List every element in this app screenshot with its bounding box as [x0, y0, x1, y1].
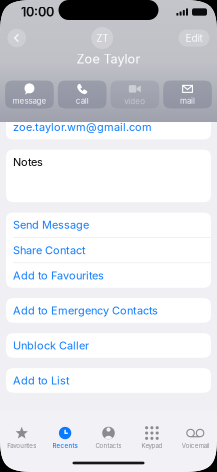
staticText: zoe.taylor.wm@gmail.com — [13, 120, 152, 134]
staticText: mail — [180, 96, 195, 106]
staticText: Add to List — [13, 374, 70, 387]
staticText: Keypad — [141, 442, 162, 449]
button[interactable]: zoe.taylor.wm@gmail.com — [6, 115, 211, 139]
button[interactable]: call — [58, 80, 106, 108]
staticText: call — [76, 96, 89, 106]
staticText: video — [124, 96, 145, 106]
button[interactable]: Unblock Caller — [6, 333, 211, 358]
staticText: Recents — [53, 442, 78, 449]
button[interactable]: Send Message — [6, 212, 211, 237]
staticText: Favourites — [7, 442, 36, 449]
staticText: 10:00 — [21, 4, 54, 20]
staticText: Edit — [185, 32, 202, 44]
button[interactable]: video — [110, 80, 159, 108]
button[interactable]: mail — [163, 80, 212, 108]
button[interactable]: Contacts — [87, 422, 130, 454]
staticText: Share Contact — [13, 243, 86, 257]
staticText: message — [12, 96, 46, 106]
staticText: Notes — [13, 155, 43, 169]
staticText: Add to Favourites — [13, 269, 104, 282]
staticText: Zoe Taylor — [76, 51, 140, 67]
button[interactable]: message — [5, 80, 54, 108]
button[interactable]: Voicemail — [174, 422, 217, 454]
button[interactable]: Add to List — [6, 368, 211, 393]
button[interactable]: Share Contact — [6, 238, 211, 262]
staticText: ZT — [96, 32, 108, 44]
button[interactable]: Keypad — [130, 422, 174, 454]
button[interactable]: Edit — [178, 29, 209, 46]
button[interactable]: Back — [7, 29, 26, 47]
button[interactable]: Add to Emergency Contacts — [6, 298, 211, 323]
button[interactable]: Add to Favourites — [6, 263, 211, 288]
staticText: Send Message — [13, 218, 89, 231]
staticText: Voicemail — [182, 442, 209, 449]
staticText: Unblock Caller — [13, 339, 89, 352]
staticText: Contacts — [95, 442, 121, 449]
button[interactable]: Favourites — [0, 422, 43, 454]
staticText: Add to Emergency Contacts — [13, 304, 158, 317]
button[interactable]: Recents — [43, 422, 87, 454]
